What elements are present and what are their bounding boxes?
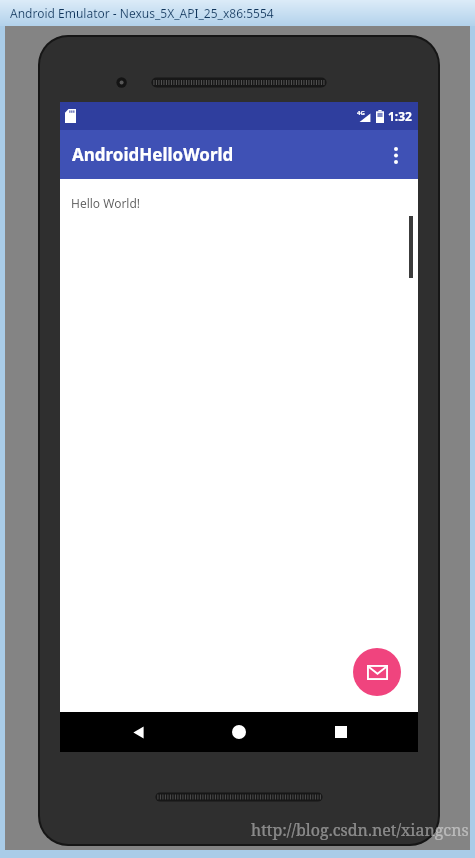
staticText: 1:32 <box>388 108 412 124</box>
button[interactable]: Compose email <box>353 648 401 696</box>
button[interactable]: More options <box>379 138 413 172</box>
button[interactable]: Recent apps <box>317 712 365 752</box>
staticText: AndroidHelloWorld <box>72 143 234 166</box>
button[interactable]: Home <box>215 712 263 752</box>
staticText: http://blog.csdn.net/xiangcns <box>251 819 469 841</box>
staticText: 4G <box>357 109 365 117</box>
button[interactable]: Back <box>114 712 162 752</box>
staticText: Hello World! <box>71 195 141 211</box>
staticText: Android Emulator - Nexus_5X_API_25_x86:5… <box>10 5 274 21</box>
